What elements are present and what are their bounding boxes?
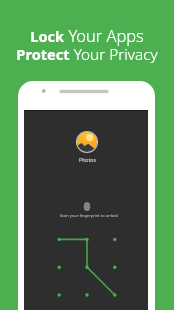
staticText: Lock Your Apps — [30, 24, 144, 46]
staticText: Scan your fingerprint to unlock — [60, 213, 119, 218]
button[interactable]: Fingerprint — [83, 201, 91, 212]
button[interactable]: Pattern lock — [24, 237, 148, 307]
staticText: Photos — [79, 156, 96, 163]
button[interactable]: Photos — [76, 131, 98, 153]
staticText: Protect Your Privacy — [16, 44, 158, 65]
